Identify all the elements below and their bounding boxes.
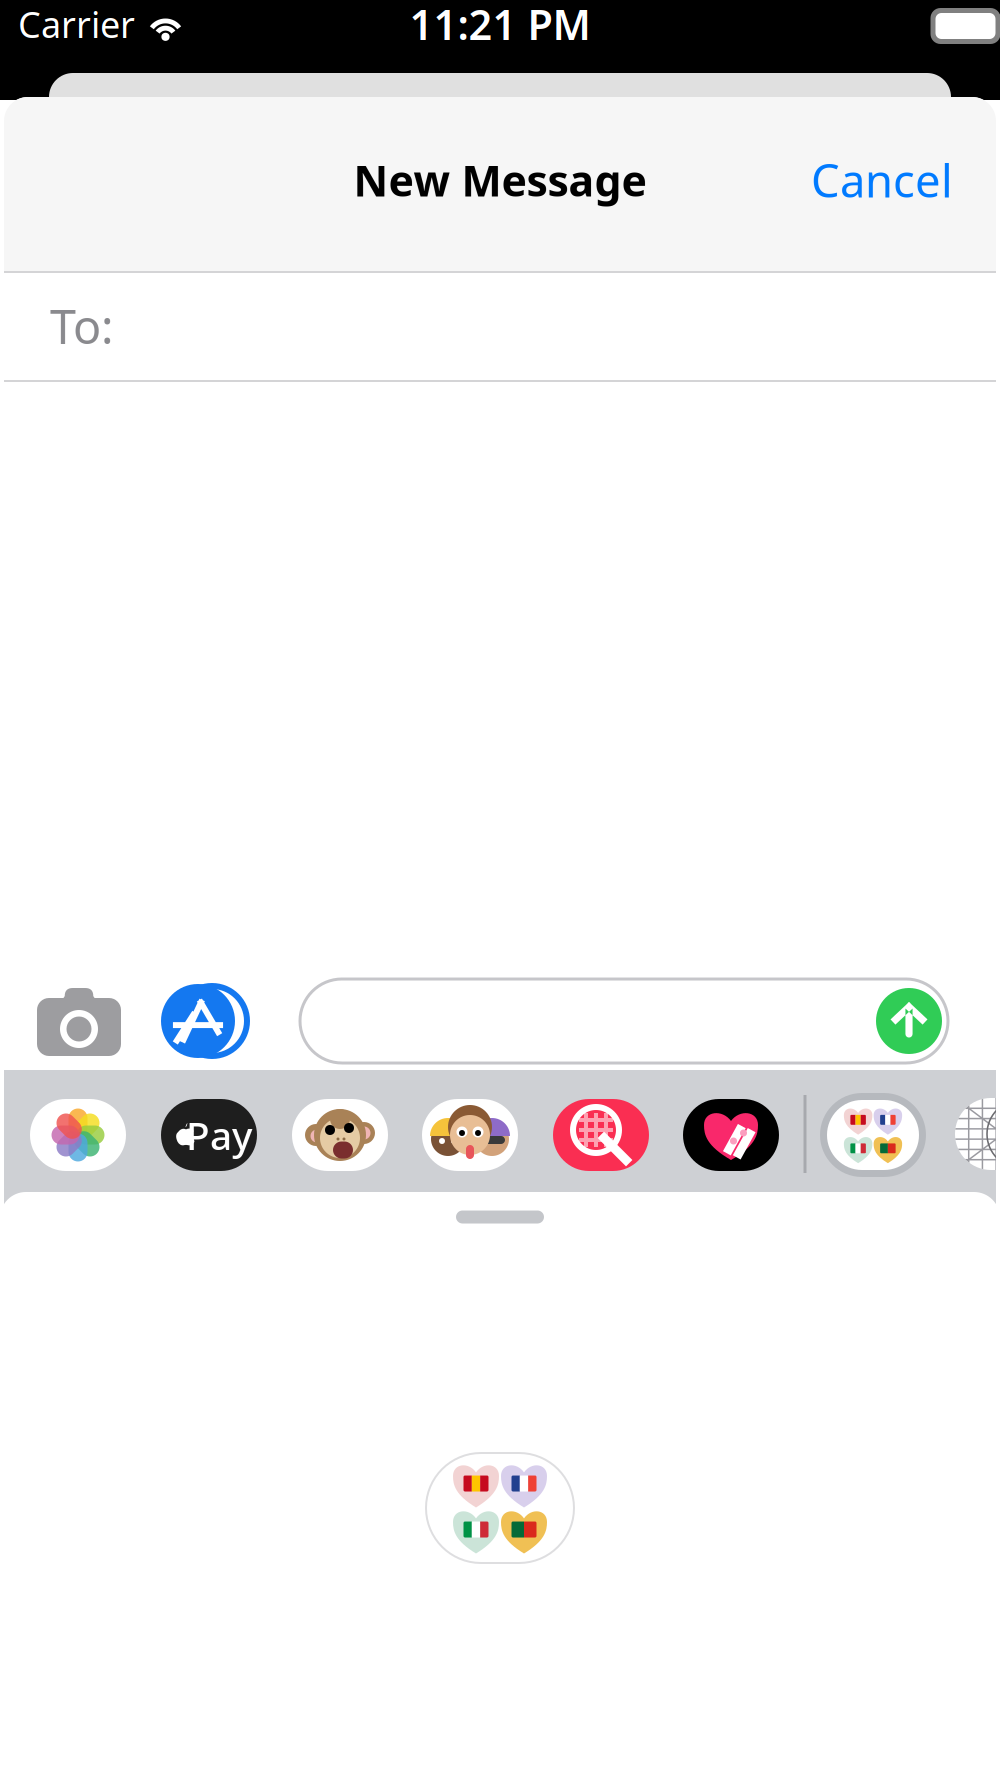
staticText: Carrier — [18, 0, 135, 48]
button[interactable]: Apple Pay — [154, 1090, 264, 1180]
button[interactable]: Flag heart sticker — [400, 1433, 600, 1583]
button[interactable]: Camera — [37, 986, 121, 1056]
staticText: Pay — [186, 1109, 252, 1161]
staticText: To: — [50, 295, 114, 357]
staticText: 11:21 PM — [409, 0, 590, 51]
button[interactable]: Music — [676, 1090, 786, 1180]
button[interactable]: Apps — [161, 984, 251, 1058]
button[interactable]: Memoji Stickers — [415, 1090, 525, 1180]
button[interactable]: Images — [546, 1090, 656, 1180]
staticText: Cancel — [811, 150, 953, 210]
button[interactable]: Flag Stickers — [814, 1087, 932, 1183]
button[interactable]: Cancel — [763, 135, 953, 225]
staticText: New Message — [353, 152, 646, 208]
button[interactable]: Photos — [23, 1090, 133, 1180]
button[interactable]: Send — [872, 984, 946, 1058]
button[interactable]: Animoji — [285, 1090, 395, 1180]
